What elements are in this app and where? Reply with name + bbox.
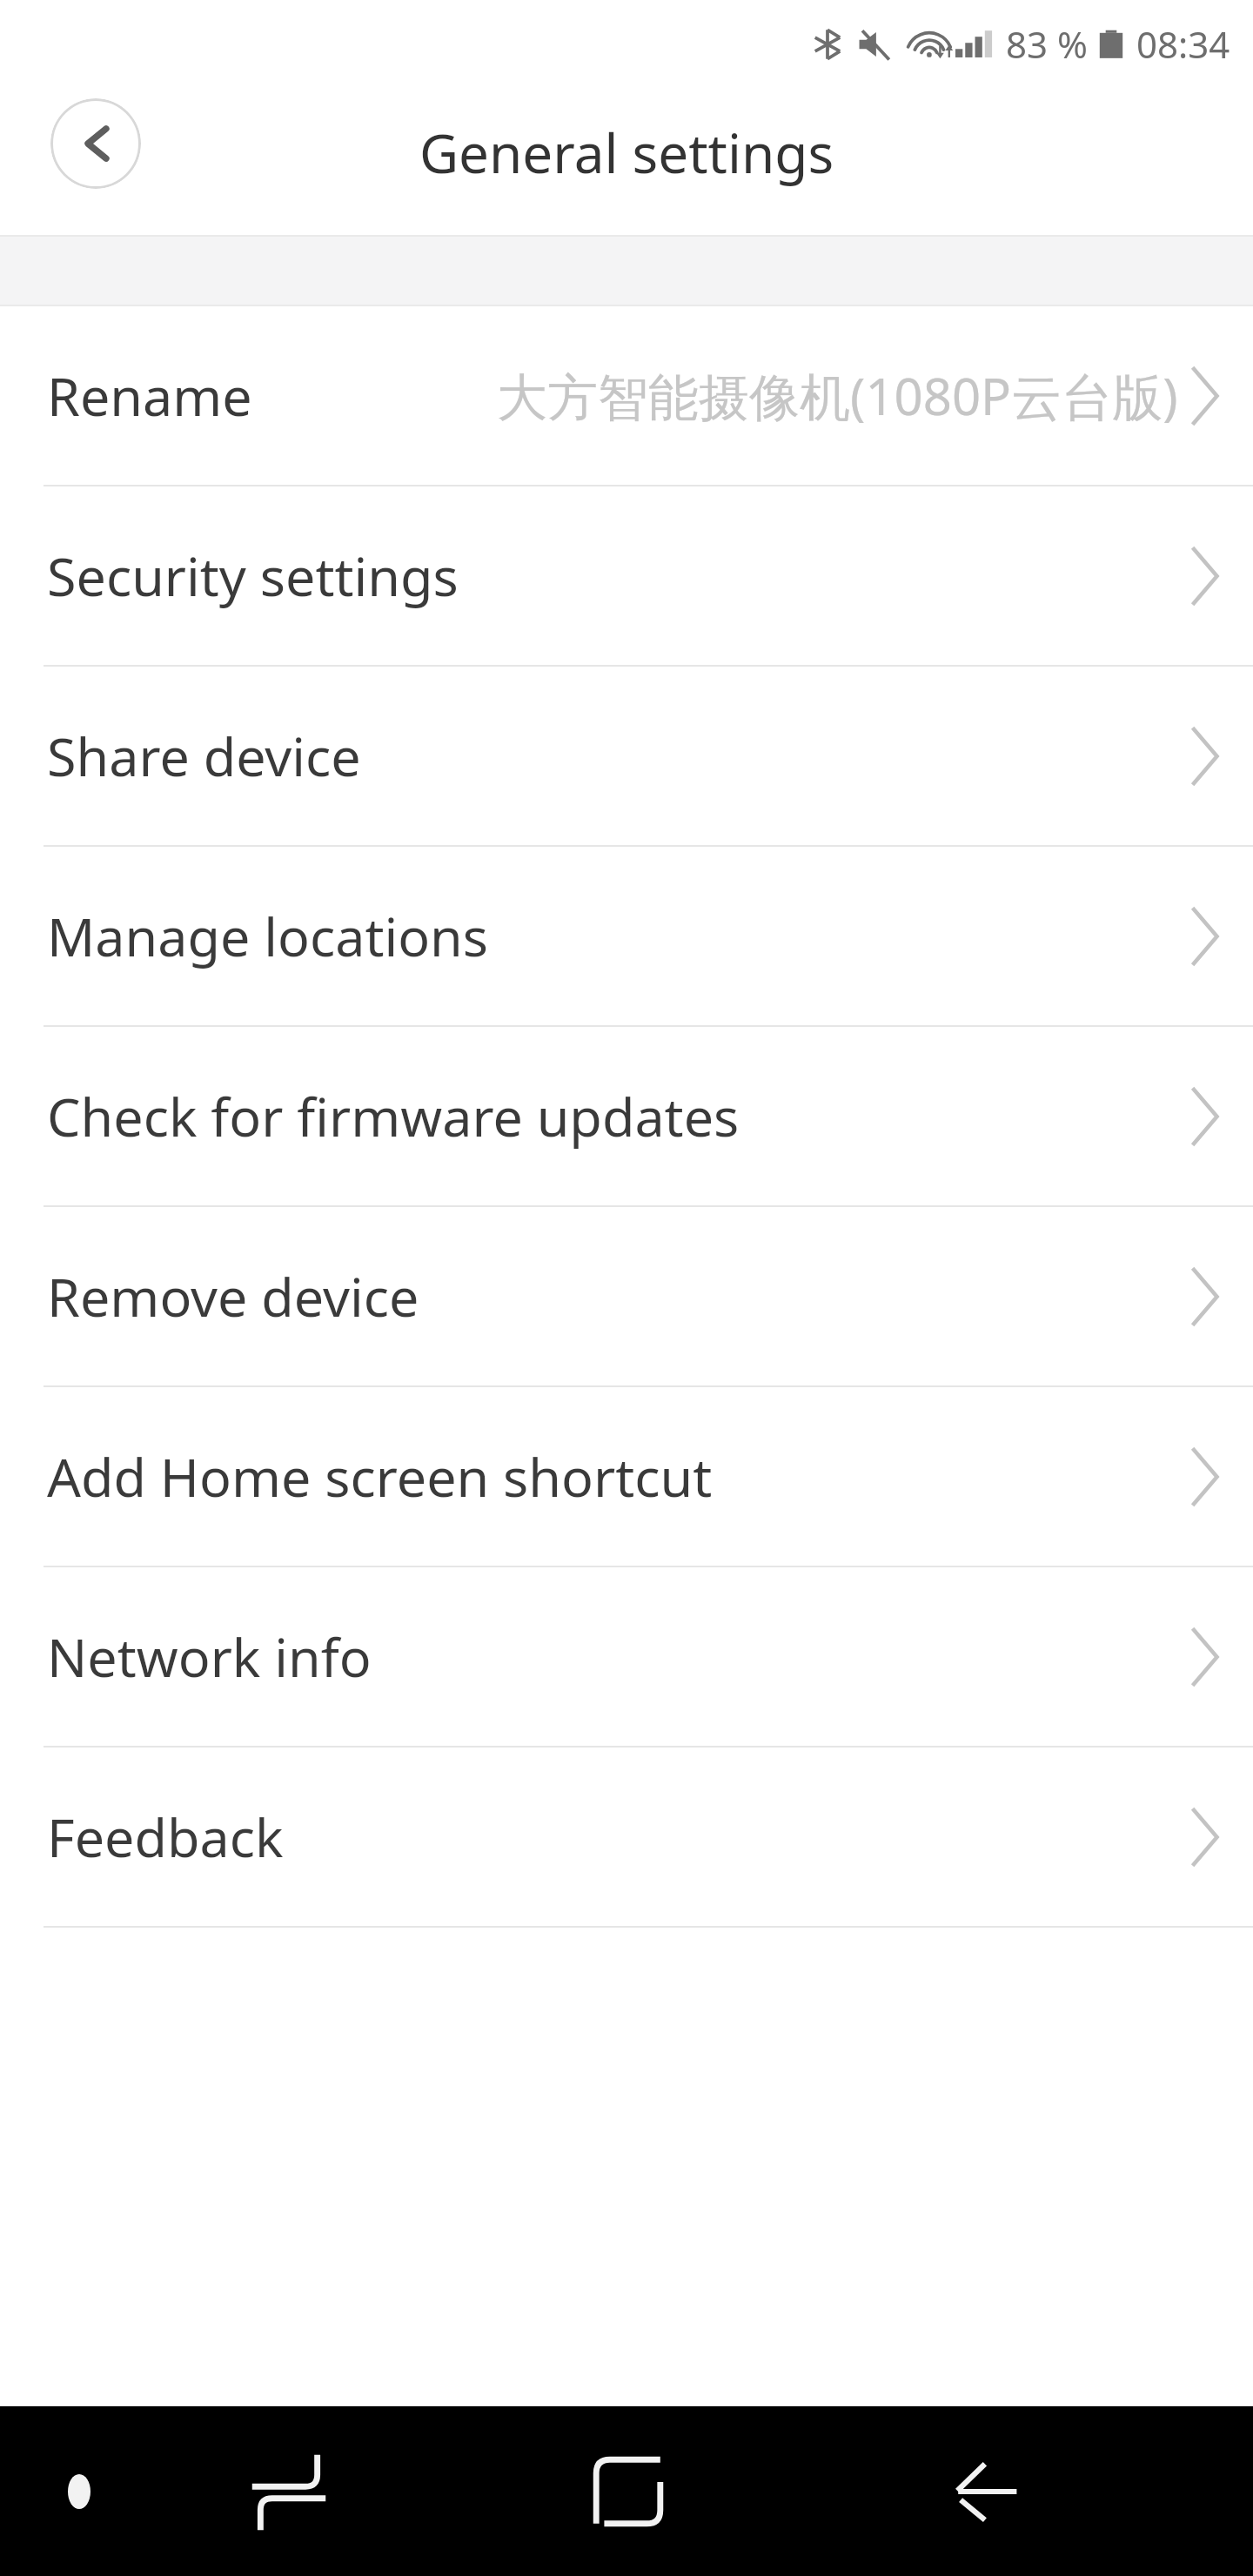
staticText: 83 % [1006,19,1088,69]
staticText: Check for firmware updates [47,1080,740,1152]
staticText: Share device [47,720,361,792]
staticText: Security settings [47,540,459,612]
staticText: 08:34 [1136,19,1230,69]
staticText: Network info [47,1620,372,1693]
button[interactable]: Back [50,98,141,189]
button[interactable]: Share device [0,667,1253,847]
button[interactable]: Network info [0,1567,1253,1748]
button[interactable]: Recent apps [228,2431,350,2553]
button[interactable]: Home [563,2426,694,2557]
button[interactable]: Add Home screen shortcut [0,1387,1253,1567]
button[interactable]: Manage locations [0,847,1253,1027]
staticText: 大方智能摄像机(1080P云台版) [497,361,1178,430]
button[interactable]: Rename [0,306,1253,486]
button[interactable]: Check for firmware updates [0,1027,1253,1207]
button[interactable]: Remove device [0,1207,1253,1387]
button[interactable]: Back [922,2431,1044,2553]
button[interactable]: Security settings [0,486,1253,667]
staticText: Add Home screen shortcut [47,1440,713,1513]
staticText: Remove device [47,1260,419,1332]
staticText: Rename [47,359,252,432]
button[interactable]: Keyboard indicator [45,2458,113,2526]
staticText: Feedback [47,1801,284,1873]
staticText: Manage locations [47,900,488,972]
staticText: General settings [0,116,1253,189]
button[interactable]: Feedback [0,1748,1253,1928]
